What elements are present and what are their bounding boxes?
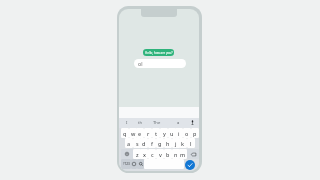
staticText: Hello, how are you? <box>145 51 173 55</box>
staticText: d <box>142 140 146 147</box>
button[interactable]: f <box>148 138 156 148</box>
button[interactable]: c <box>148 149 156 159</box>
button[interactable]: v <box>156 149 164 159</box>
staticText: e <box>138 130 142 137</box>
staticText: ?123 <box>123 162 130 166</box>
staticText: The <box>153 120 161 126</box>
button[interactable]: i <box>175 128 183 138</box>
staticText: y <box>163 130 166 137</box>
button[interactable]: The <box>149 118 165 127</box>
staticText: h <box>166 140 170 147</box>
staticText: k <box>181 140 185 147</box>
staticText: s <box>136 140 139 147</box>
button[interactable]: w <box>129 128 137 138</box>
button[interactable]: l <box>187 138 195 148</box>
button[interactable]: ?123 <box>121 159 131 169</box>
staticText: I <box>126 120 128 126</box>
staticText: x <box>143 151 146 158</box>
button[interactable]: g <box>156 138 164 148</box>
staticText: a <box>127 140 131 147</box>
button[interactable]: k <box>179 138 187 148</box>
button[interactable]: Shift <box>121 149 133 159</box>
button[interactable]: h <box>164 138 172 148</box>
button[interactable]: x <box>140 149 148 159</box>
button[interactable]: q <box>121 128 129 138</box>
button[interactable]: Backspace <box>187 149 199 159</box>
button[interactable]: Hello, how are you? <box>143 49 174 56</box>
button[interactable]: y <box>160 128 168 138</box>
staticText: j <box>175 140 177 147</box>
button[interactable]: u <box>168 128 176 138</box>
staticText: t <box>155 130 158 137</box>
button[interactable]: a <box>125 138 133 148</box>
button[interactable]: j <box>172 138 180 148</box>
button[interactable]: Voice search <box>137 159 144 169</box>
staticText: u <box>170 130 174 137</box>
button[interactable]: n <box>172 149 180 159</box>
button[interactable]: Voice input <box>186 118 198 127</box>
button[interactable]: t <box>152 128 160 138</box>
button[interactable]: o <box>183 128 191 138</box>
button[interactable]: b <box>164 149 172 159</box>
staticText: q <box>123 130 127 137</box>
button[interactable]: s <box>133 138 141 148</box>
staticText: a <box>177 120 180 126</box>
staticText: m <box>180 151 186 158</box>
staticText: th <box>138 120 143 126</box>
staticText: v <box>159 151 162 158</box>
staticText: g <box>158 140 162 147</box>
staticText: f <box>151 140 153 147</box>
staticText: ol <box>138 60 143 67</box>
button[interactable]: r <box>144 128 152 138</box>
staticText: l <box>190 140 192 147</box>
button[interactable]: e <box>136 128 144 138</box>
staticText: i <box>178 130 180 137</box>
staticText: b <box>166 151 170 158</box>
staticText: w <box>131 130 136 137</box>
staticText: c <box>151 151 154 158</box>
staticText: n <box>174 151 178 158</box>
button[interactable]: th <box>132 118 148 127</box>
staticText: z <box>136 151 139 158</box>
button[interactable]: z <box>133 149 141 159</box>
button[interactable]: Emoji <box>131 159 137 169</box>
button[interactable]: d <box>140 138 148 148</box>
staticText: o <box>185 130 189 137</box>
button[interactable]: I <box>119 118 135 127</box>
button[interactable]: ol <box>134 59 186 68</box>
button[interactable]: Send <box>185 160 195 170</box>
button[interactable]: p <box>191 128 199 138</box>
staticText: r <box>147 130 150 137</box>
button[interactable]: m <box>179 149 187 159</box>
staticText: p <box>193 130 197 137</box>
button[interactable]: a <box>170 118 186 127</box>
